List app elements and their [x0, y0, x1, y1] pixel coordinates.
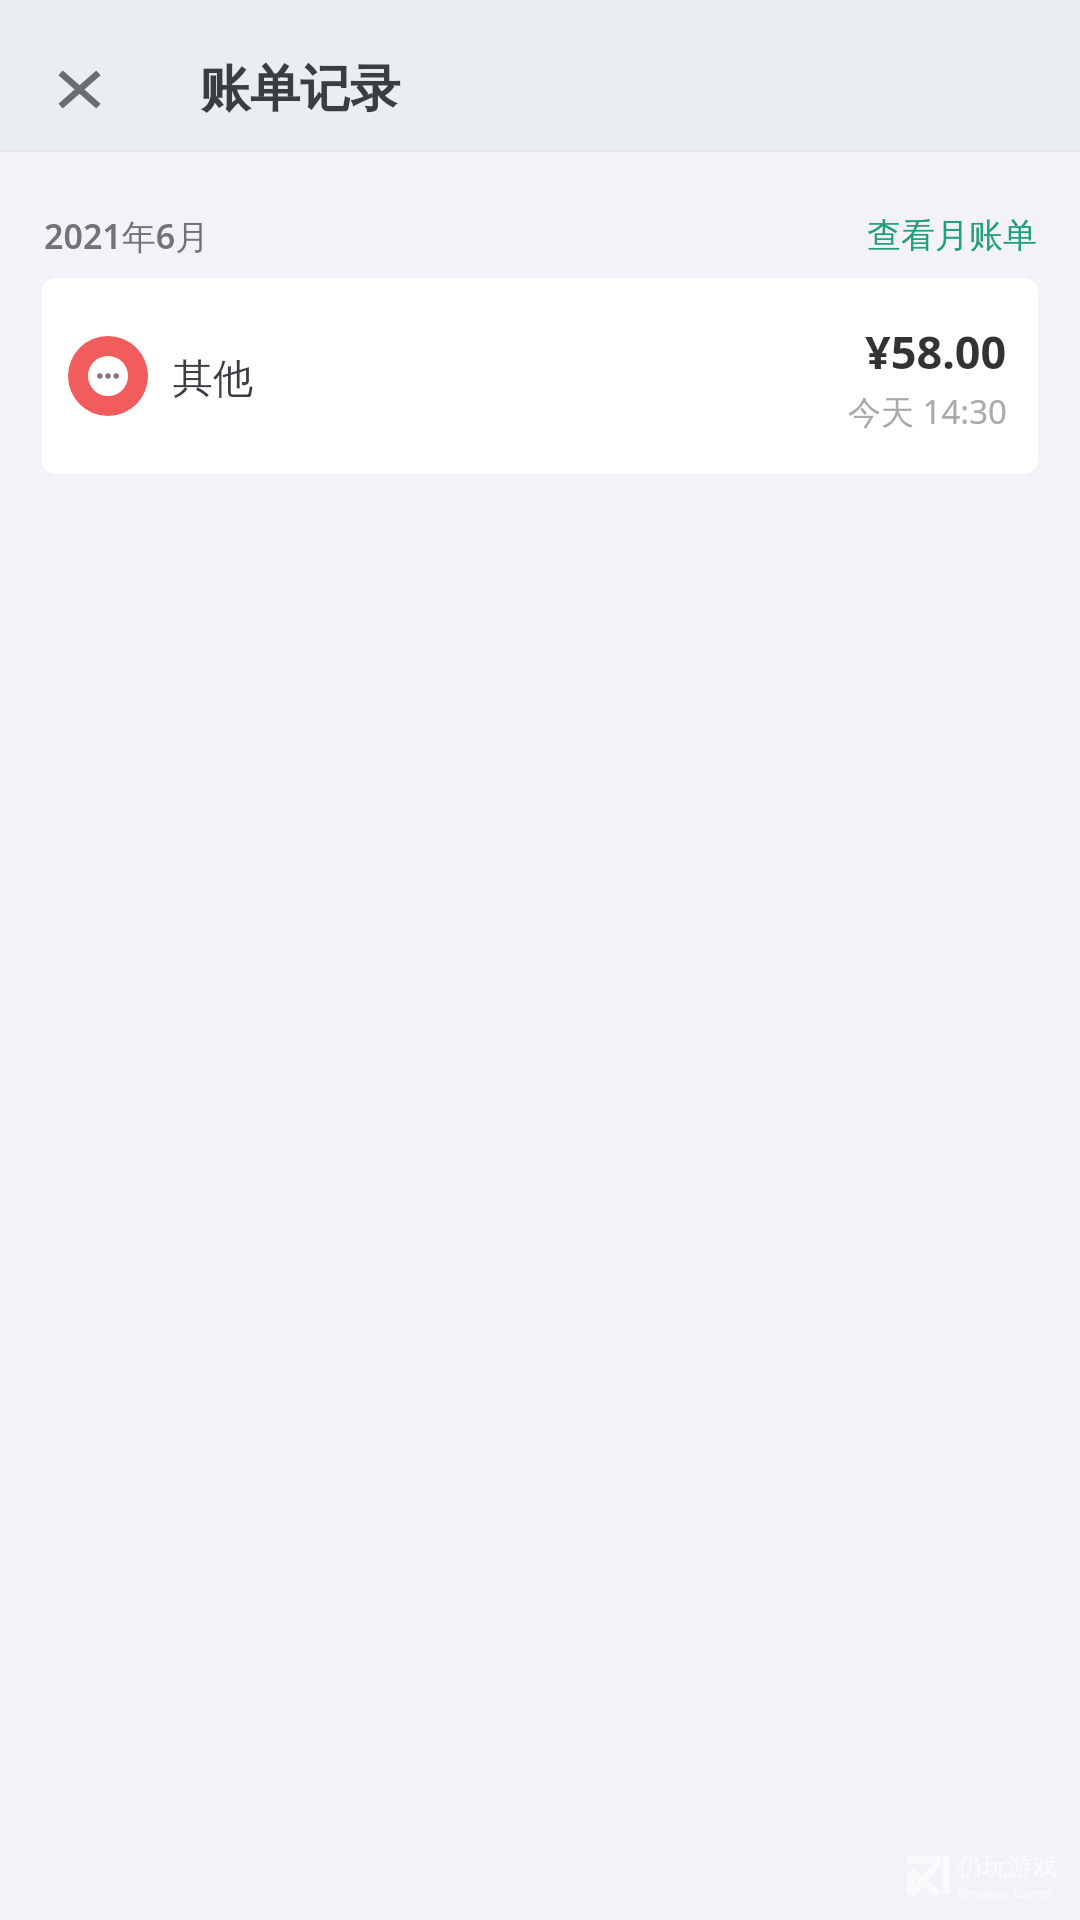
button[interactable]: Close [38, 48, 120, 130]
staticText: 查看月账单 [867, 214, 1037, 257]
button[interactable]: 查看月账单 [867, 214, 1037, 257]
staticText: 2021年6月 [44, 213, 210, 259]
staticText: ¥58.00 [865, 321, 1007, 382]
staticText: 其他 [173, 353, 253, 403]
staticText: 今天 14:30 [848, 389, 1007, 434]
button[interactable]: 其他 [42, 278, 1038, 474]
staticText: 账单记录 [200, 58, 400, 121]
